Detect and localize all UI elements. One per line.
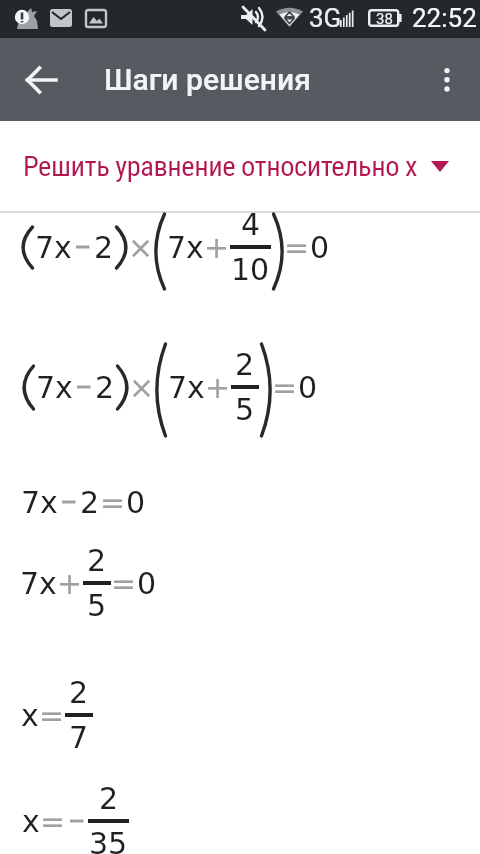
staticText: 7x	[21, 485, 58, 520]
button[interactable]	[14, 52, 70, 108]
staticText: 7x	[168, 370, 205, 405]
staticText: 0	[298, 370, 318, 405]
staticText: Решить уравнение относительно x	[23, 150, 418, 183]
staticText: =	[111, 566, 137, 601]
staticText: ×	[129, 370, 155, 405]
staticText: =	[39, 698, 65, 733]
staticText: 2	[80, 485, 100, 520]
staticText: 3G	[309, 3, 342, 33]
staticText: +	[57, 566, 83, 601]
staticText: =	[272, 370, 298, 405]
staticText: 4	[241, 207, 261, 242]
staticText: 7	[69, 720, 89, 755]
button[interactable]	[425, 56, 469, 100]
staticText: +	[205, 370, 231, 405]
staticText: x	[22, 804, 40, 839]
staticText: 7x	[167, 230, 204, 265]
staticText: =	[284, 230, 310, 265]
staticText: 0	[137, 566, 157, 601]
staticText: 7x	[20, 566, 57, 601]
staticText: =	[40, 804, 66, 839]
staticText: 5	[87, 588, 107, 623]
staticText: 5	[235, 392, 255, 427]
button[interactable]: Решить уравнение относительно x	[23, 143, 418, 189]
staticText: =	[100, 485, 126, 520]
staticText: Шаги решения	[104, 62, 311, 97]
staticText: 0	[126, 485, 146, 520]
staticText: 10	[231, 252, 270, 287]
staticText: 7x	[35, 230, 72, 265]
staticText: 2	[87, 543, 107, 578]
staticText: 38	[376, 10, 393, 28]
staticText: 7x	[36, 370, 73, 405]
staticText: +	[204, 230, 230, 265]
staticText: 2	[94, 230, 114, 265]
staticText: 22:52	[412, 3, 477, 33]
staticText: 2	[235, 347, 255, 382]
staticText: 2	[95, 370, 115, 405]
staticText: x	[21, 698, 39, 733]
staticText: 2	[69, 675, 89, 710]
staticText: 35	[89, 826, 128, 854]
staticText: ×	[128, 230, 154, 265]
staticText: 0	[310, 230, 330, 265]
staticText: 2	[99, 781, 119, 816]
